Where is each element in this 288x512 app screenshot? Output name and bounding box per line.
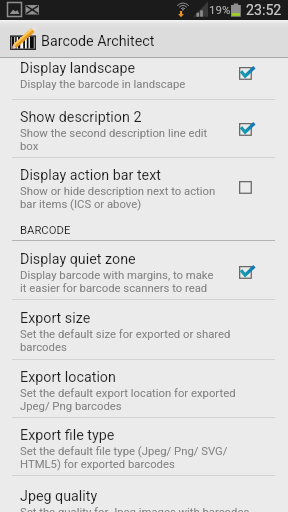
button[interactable]: Display action bar text	[0, 158, 288, 218]
staticText: Set the default size for exported or sha…	[20, 328, 252, 354]
other: Checked	[239, 119, 257, 133]
staticText: Display the barcode in landscape	[20, 78, 186, 91]
button[interactable]: Export location	[0, 360, 288, 418]
staticText: 19%	[209, 3, 231, 16]
staticText: Barcode Architect	[41, 33, 155, 50]
other: Not checked	[239, 177, 257, 191]
staticText: Export location	[20, 369, 116, 386]
button[interactable]: Display quiet zone	[0, 241, 288, 300]
other: Checked	[239, 262, 257, 276]
staticText: Show description 2	[20, 109, 142, 126]
staticText: 23:52	[246, 2, 282, 19]
staticText: Jpeg quality	[20, 488, 98, 505]
staticText: Show or hide description next to action …	[20, 185, 221, 211]
staticText: Display action bar text	[20, 167, 161, 184]
other: Checked	[239, 63, 257, 77]
staticText: Set the quality for Jpeg images with bar…	[20, 506, 250, 512]
staticText: Set the default export location for expo…	[20, 387, 252, 413]
staticText: Export size	[20, 310, 91, 327]
other: App icon	[10, 27, 36, 50]
button[interactable]: Export size	[0, 300, 288, 360]
staticText: Set the default file type (Jpeg/ Png/ SV…	[20, 445, 252, 471]
staticText: Export file type	[20, 427, 115, 444]
button[interactable]: Show description 2	[0, 100, 288, 158]
button[interactable]: Export file type	[0, 418, 288, 476]
button[interactable]: Display landscape	[0, 58, 288, 100]
staticText: Show the second description line edit bo…	[20, 127, 221, 153]
staticText: Display landscape	[20, 60, 136, 77]
staticText: Display quiet zone	[20, 251, 136, 268]
staticText: BARCODE	[20, 224, 71, 237]
button[interactable]: App icon	[0, 20, 288, 58]
button[interactable]: Jpeg quality	[0, 476, 288, 512]
staticText: Display barcode with margins, to make it…	[20, 269, 221, 295]
